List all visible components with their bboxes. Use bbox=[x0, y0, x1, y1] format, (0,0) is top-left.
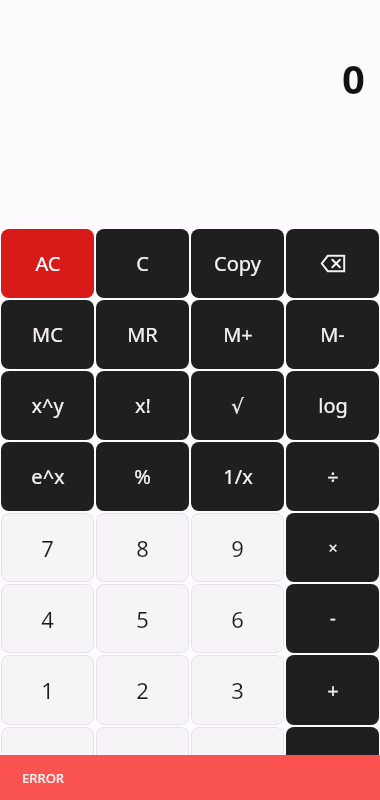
button[interactable]: AC bbox=[1, 229, 94, 298]
staticText: 9 bbox=[231, 533, 244, 563]
staticText: MC bbox=[32, 321, 63, 348]
staticText: C bbox=[136, 250, 149, 277]
staticText: Copy bbox=[214, 250, 261, 277]
button[interactable]: 8 bbox=[96, 513, 189, 582]
staticText: MR bbox=[127, 321, 158, 348]
button[interactable]: ÷ bbox=[286, 442, 379, 511]
staticText: ERROR bbox=[22, 769, 65, 787]
button[interactable]: log bbox=[286, 371, 379, 440]
staticText: +/- bbox=[224, 747, 252, 777]
button[interactable]: M+ bbox=[191, 300, 284, 369]
button[interactable]: MR bbox=[96, 300, 189, 369]
staticText: √ bbox=[231, 394, 244, 417]
button[interactable]: √ bbox=[191, 371, 284, 440]
button[interactable]: 3 bbox=[191, 655, 284, 725]
button[interactable]: 5 bbox=[96, 584, 189, 653]
staticText: x! bbox=[135, 392, 151, 419]
button[interactable]: 7 bbox=[1, 513, 94, 582]
staticText: . bbox=[45, 747, 51, 777]
button[interactable]: ERROR bbox=[0, 755, 380, 800]
staticText: + bbox=[327, 677, 339, 704]
button[interactable]: 4 bbox=[1, 584, 94, 653]
staticText: log bbox=[318, 392, 348, 419]
staticText: 3 bbox=[231, 675, 244, 705]
staticText: = bbox=[327, 748, 339, 775]
button[interactable]: x! bbox=[96, 371, 189, 440]
staticText: 7 bbox=[41, 533, 54, 563]
staticText: 1/x bbox=[223, 463, 253, 490]
staticText: M- bbox=[320, 321, 345, 348]
staticText: 8 bbox=[136, 533, 149, 563]
staticText: M+ bbox=[223, 321, 253, 348]
button[interactable]: 0 bbox=[96, 727, 189, 796]
button[interactable]: 2 bbox=[96, 655, 189, 725]
staticText: 2 bbox=[136, 675, 149, 705]
button[interactable]: C bbox=[96, 229, 189, 298]
button[interactable]: = bbox=[286, 727, 379, 796]
staticText: × bbox=[328, 537, 338, 559]
button[interactable]: M- bbox=[286, 300, 379, 369]
button[interactable]: 1 bbox=[1, 655, 94, 725]
staticText: 0 bbox=[136, 747, 149, 777]
staticText: ÷ bbox=[327, 463, 339, 490]
staticText: - bbox=[330, 606, 336, 631]
button[interactable]: + bbox=[286, 655, 379, 725]
staticText: 5 bbox=[136, 604, 149, 634]
staticText: % bbox=[134, 463, 151, 490]
staticText: x^y bbox=[31, 392, 64, 419]
button[interactable]: +/- bbox=[191, 727, 284, 796]
button[interactable]: e^x bbox=[1, 442, 94, 511]
button[interactable]: 9 bbox=[191, 513, 284, 582]
button[interactable]: MC bbox=[1, 300, 94, 369]
staticText: 4 bbox=[41, 604, 54, 634]
staticText: 6 bbox=[231, 604, 244, 634]
button[interactable]: % bbox=[96, 442, 189, 511]
staticText: 0 bbox=[342, 51, 365, 105]
staticText: e^x bbox=[31, 463, 65, 490]
button[interactable]: 1/x bbox=[191, 442, 284, 511]
button[interactable]: . bbox=[1, 727, 94, 796]
button[interactable]: x^y bbox=[1, 371, 94, 440]
staticText: 1 bbox=[41, 675, 54, 705]
button[interactable]: - bbox=[286, 584, 379, 653]
button[interactable]: × bbox=[286, 513, 379, 582]
button[interactable]: Copy bbox=[191, 229, 284, 298]
button[interactable]: 6 bbox=[191, 584, 284, 653]
staticText: AC bbox=[35, 250, 61, 277]
button[interactable]: Backspace bbox=[286, 229, 379, 298]
